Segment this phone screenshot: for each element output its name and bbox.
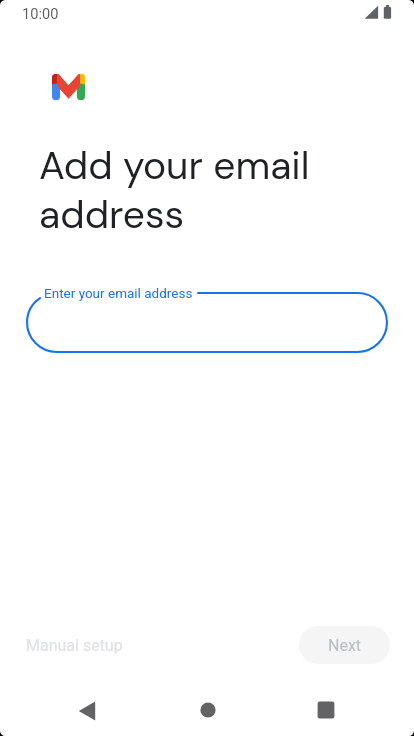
button[interactable]: Recent apps xyxy=(302,686,350,734)
button[interactable]: Enter your email address xyxy=(26,292,388,353)
staticText: Next xyxy=(328,636,362,655)
button[interactable]: Back xyxy=(63,687,111,735)
button[interactable]: Manual setup xyxy=(10,627,139,663)
staticText: Manual setup xyxy=(26,636,123,655)
button[interactable]: Home xyxy=(184,686,232,734)
staticText: address xyxy=(39,189,185,240)
staticText: Enter your email address xyxy=(44,285,193,301)
button[interactable]: Next xyxy=(299,626,390,664)
staticText: Add your email xyxy=(39,140,310,191)
staticText: 10:00 xyxy=(22,5,59,22)
